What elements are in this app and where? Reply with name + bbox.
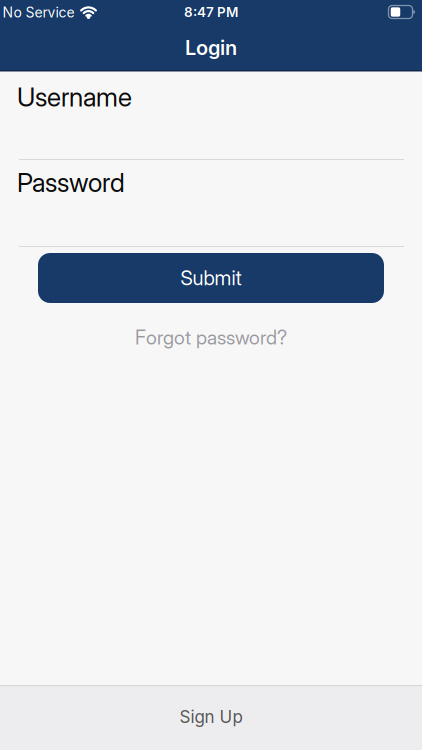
staticText: No Service (2, 4, 74, 21)
staticText: Sign Up (179, 706, 242, 727)
staticText: Login (185, 35, 237, 60)
staticText: Password (17, 167, 125, 198)
staticText: Username (17, 81, 132, 113)
staticText: 8:47 PM (184, 4, 238, 20)
button[interactable]: Forgot password? (135, 325, 287, 349)
staticText: Submit (180, 266, 241, 290)
button[interactable]: Submit (38, 253, 384, 303)
button[interactable]: Sign Up (0, 686, 422, 750)
staticText: Forgot password? (135, 325, 287, 349)
